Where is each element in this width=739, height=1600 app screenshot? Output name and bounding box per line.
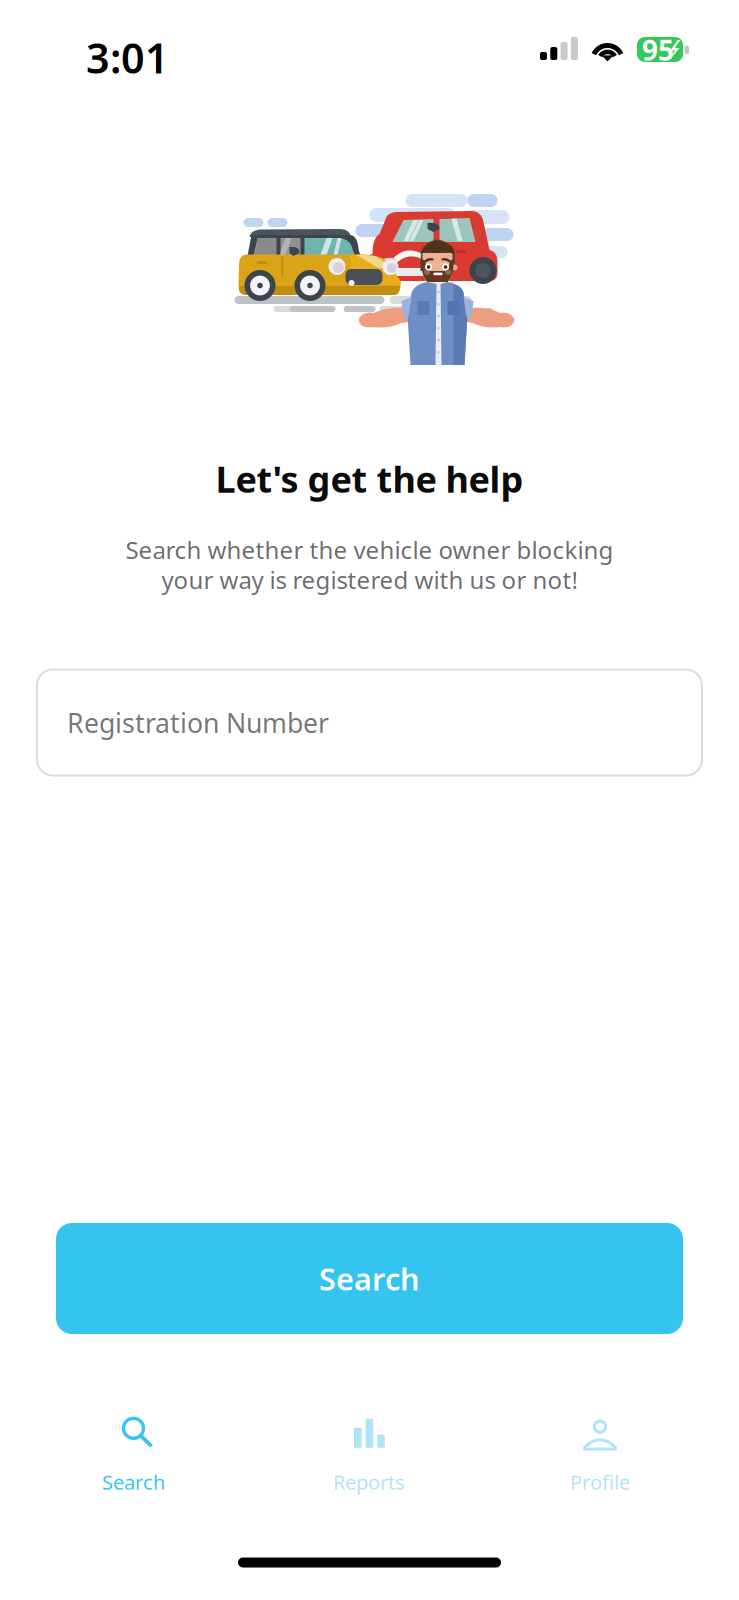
staticText: your way is registered with us or not! bbox=[161, 564, 577, 596]
staticText: Search bbox=[102, 1469, 165, 1495]
button[interactable]: Search bbox=[58, 1401, 208, 1511]
button[interactable]: Reports bbox=[294, 1401, 444, 1511]
button[interactable]: Profile bbox=[525, 1401, 675, 1511]
button[interactable]: Search bbox=[56, 1223, 683, 1334]
staticText: Profile bbox=[570, 1469, 630, 1495]
staticText: Search bbox=[319, 1258, 420, 1299]
button[interactable]: Registration Number bbox=[37, 670, 702, 776]
staticText: Registration Number bbox=[67, 705, 329, 740]
staticText: Reports bbox=[333, 1469, 405, 1495]
staticText: 3:01 bbox=[86, 30, 169, 85]
staticText: Let's get the help bbox=[215, 455, 523, 503]
staticText: Search whether the vehicle owner blockin… bbox=[125, 534, 613, 566]
staticText: 95 bbox=[642, 31, 674, 69]
